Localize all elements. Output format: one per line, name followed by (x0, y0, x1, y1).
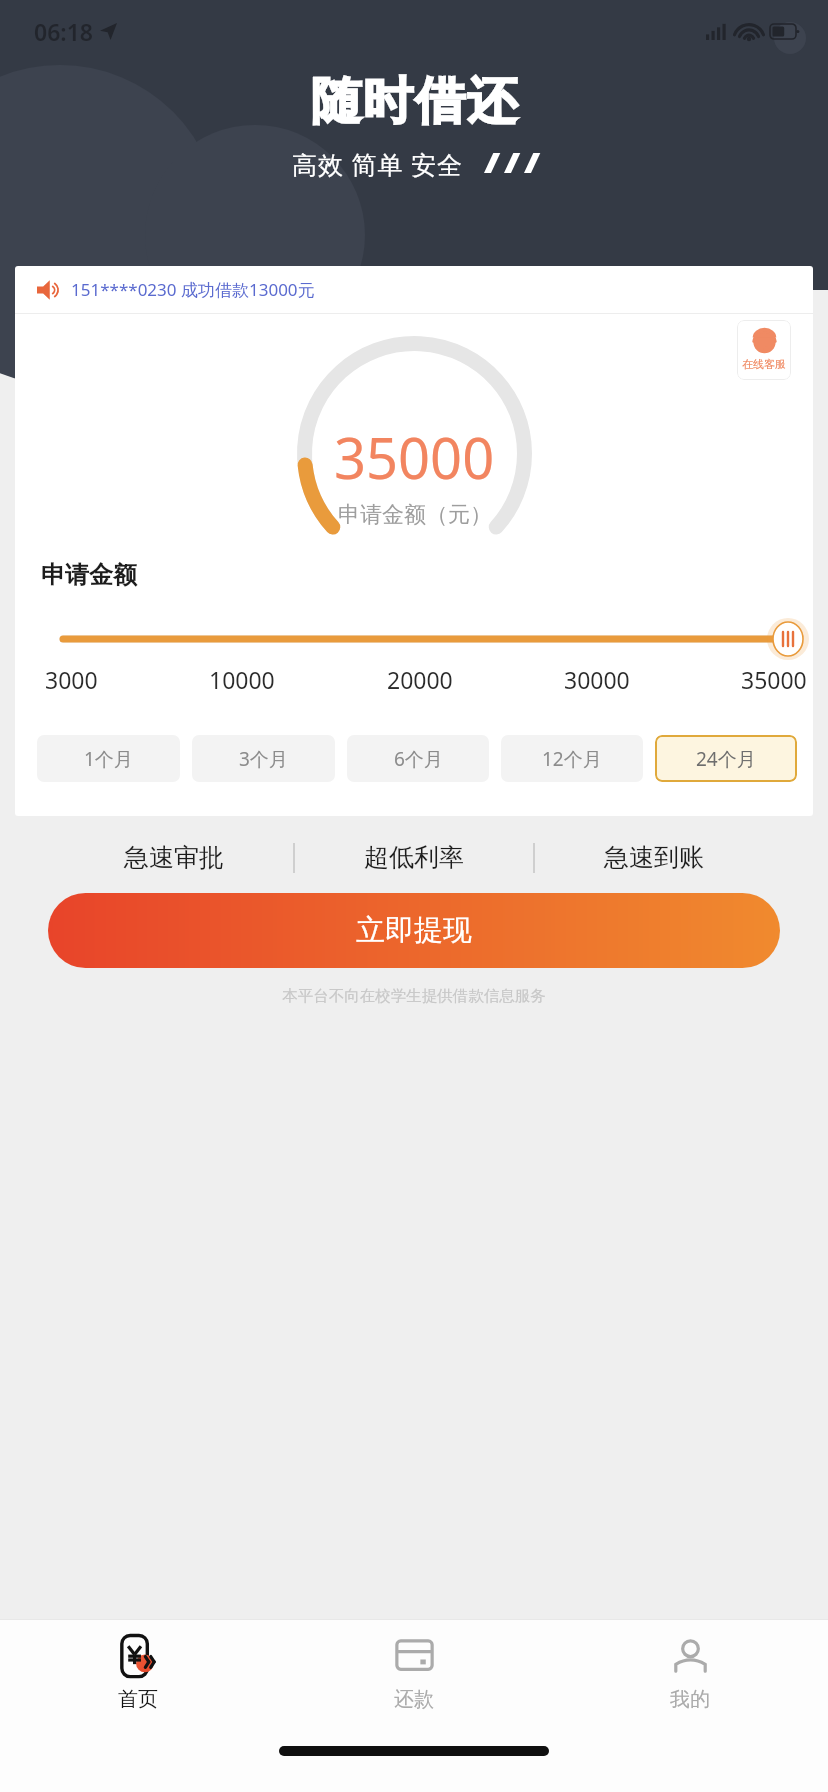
staticText: 1个月 (84, 746, 133, 772)
button[interactable]: 立即提现 (48, 893, 780, 968)
staticText: 随时借还 (310, 70, 518, 133)
button[interactable]: 还款 (276, 1620, 552, 1738)
button[interactable]: 3个月 (192, 735, 335, 782)
staticText: 急速到账 (604, 842, 704, 873)
staticText: 35000 (741, 664, 807, 695)
staticText: 申请金额 (41, 560, 137, 590)
staticText: 06:18 (34, 16, 93, 47)
button[interactable]: 我的 (552, 1620, 828, 1738)
staticText: 首页 (118, 1687, 158, 1712)
staticText: 35000 (334, 419, 495, 495)
staticText: 在线客服 (742, 357, 786, 371)
button[interactable]: 首页 (0, 1620, 276, 1738)
staticText: 超低利率 (364, 842, 464, 873)
button[interactable]: 6个月 (347, 735, 489, 782)
staticText: 12个月 (542, 746, 602, 772)
staticText: 本平台不向在校学生提供借款信息服务 (0, 986, 828, 1006)
button[interactable]: 151****0230 成功借款13000元 (15, 266, 813, 313)
staticText: 3000 (45, 664, 98, 695)
button[interactable]: 金额滑块 (15, 622, 813, 656)
staticText: 申请金额（元） (338, 501, 492, 529)
staticText: 20000 (387, 664, 453, 695)
staticText: 高效 简单 安全 (292, 147, 464, 181)
staticText: 我的 (670, 1687, 710, 1712)
staticText: 10000 (209, 664, 275, 695)
staticText: 3个月 (239, 746, 288, 772)
staticText: 急速审批 (124, 842, 224, 873)
button[interactable]: 1个月 (37, 735, 180, 782)
staticText: 30000 (564, 664, 630, 695)
staticText: 还款 (394, 1687, 434, 1712)
button[interactable]: 12个月 (501, 735, 643, 782)
staticText: 24个月 (696, 746, 756, 772)
staticText: 6个月 (394, 746, 443, 772)
staticText: 151****0230 成功借款13000元 (71, 278, 315, 301)
button[interactable]: 24个月 (655, 735, 797, 782)
staticText: 立即提现 (356, 912, 472, 949)
button[interactable]: 在线客服 (737, 320, 791, 380)
